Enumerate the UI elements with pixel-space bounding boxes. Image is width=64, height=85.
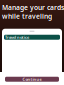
staticText: Continue <box>22 77 41 82</box>
staticText: Manage your cards <box>2 3 64 12</box>
button[interactable]: Continue <box>5 77 59 82</box>
staticText: Travel notice <box>5 35 29 40</box>
staticText: while traveling <box>2 12 52 21</box>
